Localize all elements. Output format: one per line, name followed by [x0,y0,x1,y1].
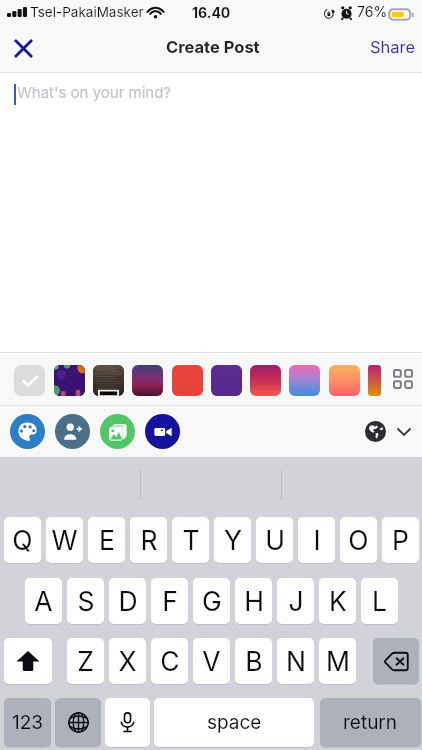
button[interactable]: Photo 9 [368,365,381,396]
staticText: G [202,585,222,617]
staticText: Y [224,524,242,556]
button[interactable]: M [319,638,356,684]
button[interactable]: H [235,578,272,624]
button[interactable]: V [193,638,230,684]
staticText: A [34,585,53,617]
staticText: S [77,585,95,617]
staticText: C [160,645,180,677]
button[interactable]: All photos [387,363,419,395]
button[interactable]: What's on your mind? [0,73,422,352]
button[interactable]: return [320,698,421,747]
staticText: Q [12,524,33,556]
staticText: E [99,524,115,556]
button[interactable]: S [67,578,104,624]
staticText: Create Post [166,37,260,57]
staticText: P [392,524,409,556]
button[interactable]: E [88,517,125,563]
staticText: D [118,585,138,617]
button[interactable]: Audience: Public [362,415,413,448]
staticText: O [348,524,369,556]
button[interactable]: Change keyboard [55,698,101,747]
button[interactable]: P [382,517,419,563]
staticText: N [286,645,306,677]
button[interactable]: Close [5,30,42,67]
button[interactable]: Live video [145,414,180,449]
button[interactable]: Share [364,28,422,66]
staticText: Tsel-PakaiMasker [30,4,144,20]
button[interactable]: Photo 6 [250,365,281,396]
staticText: K [329,585,347,617]
staticText: U [265,524,285,556]
staticText: H [244,585,264,617]
button[interactable]: T [172,517,209,563]
button[interactable]: B [235,638,272,684]
staticText: T [182,524,200,556]
button[interactable]: Photo [100,414,135,449]
button[interactable]: X [109,638,146,684]
button[interactable]: C [151,638,188,684]
button[interactable]: G [193,578,230,624]
button[interactable]: Photo 2 [93,365,124,396]
button[interactable]: Shift [4,638,52,684]
button[interactable]: U [256,517,293,563]
staticText: Z [77,645,94,677]
button[interactable]: space [154,698,314,747]
button[interactable]: Photo 4 [172,365,203,396]
button[interactable]: Selected [14,365,45,396]
staticText: return [343,711,398,734]
button[interactable]: Background colour [10,414,45,449]
button[interactable]: N [277,638,314,684]
staticText: 76% [357,3,388,20]
button[interactable]: I [298,517,335,563]
staticText: What's on your mind? [17,83,172,101]
button[interactable]: Photo 1 [54,365,85,396]
button[interactable]: Photo 5 [211,365,242,396]
staticText: I [313,524,321,556]
staticText: L [372,585,387,617]
staticText: Share [370,37,416,57]
button[interactable]: Photo 8 [329,365,360,396]
button[interactable]: Z [67,638,104,684]
staticText: J [288,585,304,617]
staticText: 16.40 [192,4,231,21]
button[interactable]: Photo 7 [289,365,320,396]
button[interactable]: W [46,517,83,563]
button[interactable]: K [319,578,356,624]
button[interactable]: Dictation [105,698,150,747]
staticText: B [245,645,263,677]
button[interactable]: Q [4,517,41,563]
button[interactable]: Backspace [373,638,419,684]
button[interactable]: Y [214,517,251,563]
button[interactable]: A [25,578,62,624]
staticText: V [202,645,221,677]
button[interactable]: D [109,578,146,624]
staticText: M [326,645,350,677]
button[interactable]: Numbers [4,698,51,747]
button[interactable]: L [361,578,398,624]
staticText: space [207,711,262,734]
button[interactable]: O [340,517,377,563]
button[interactable]: F [151,578,188,624]
button[interactable]: R [130,517,167,563]
button[interactable]: Tag people [55,414,90,449]
staticText: F [162,585,178,617]
button[interactable]: J [277,578,314,624]
button[interactable]: Photo 3 [132,365,163,396]
staticText: W [51,524,78,556]
staticText: R [140,524,158,556]
staticText: X [118,645,137,677]
staticText: 123 [12,711,44,734]
